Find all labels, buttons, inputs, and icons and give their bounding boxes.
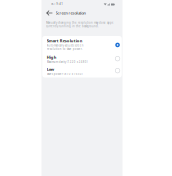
staticText: High bbox=[47, 55, 57, 60]
staticText: Screen resolution bbox=[55, 10, 85, 16]
staticText: Manually changing the resolution may clo… bbox=[46, 21, 113, 28]
button[interactable]: Smart Resolution bbox=[42, 36, 122, 52]
staticText: 9:41 bbox=[56, 2, 63, 6]
staticText: SKT bbox=[51, 2, 55, 6]
staticText: Low bbox=[47, 67, 54, 72]
button[interactable]: Low bbox=[42, 64, 122, 78]
button[interactable]: Back bbox=[46, 10, 53, 16]
button[interactable]: High bbox=[42, 52, 122, 64]
staticText: Automatically adjusts screen resolution … bbox=[47, 44, 84, 51]
staticText: Maximum clarity (1220 x 2480) bbox=[47, 60, 88, 64]
staticText: Saves power (810 x 1650) bbox=[47, 72, 83, 76]
staticText: Smart Resolution bbox=[47, 38, 83, 43]
